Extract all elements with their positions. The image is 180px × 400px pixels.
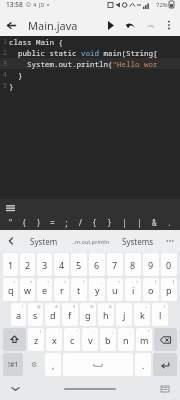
button[interactable]: 7 (107, 253, 123, 276)
button[interactable]: 0 (161, 253, 177, 276)
button[interactable]: ; (59, 214, 73, 230)
staticText: % (90, 304, 94, 309)
button[interactable]: System (22, 230, 66, 252)
button[interactable]: x (46, 328, 62, 351)
staticText: ⚙ (31, 361, 38, 369)
button[interactable]: e (37, 278, 52, 301)
staticText: System.out.println("Hello wor (9, 59, 158, 69)
button[interactable]: m (136, 328, 152, 351)
button[interactable]: j (116, 303, 132, 326)
staticText: ] (173, 279, 175, 284)
button[interactable]: 1 (0, 36, 180, 199)
button[interactable]: u (107, 278, 123, 301)
button[interactable]: i (125, 278, 141, 301)
button[interactable]: v (82, 328, 98, 351)
staticText: } (9, 81, 14, 91)
staticText: " (8, 217, 13, 228)
button[interactable]: z (28, 328, 44, 351)
staticText: $ (73, 304, 76, 309)
button[interactable]: Menu (6, 202, 18, 214)
staticText: b (105, 334, 111, 346)
button[interactable]: Back (0, 14, 22, 36)
button[interactable]: | (117, 214, 132, 230)
staticText: 72% (156, 1, 168, 9)
button[interactable]: t (71, 278, 87, 301)
button[interactable]: f (62, 303, 78, 326)
button[interactable]: a (11, 303, 26, 326)
staticText: z (34, 334, 39, 346)
staticText: e (42, 284, 48, 296)
button[interactable]: 5 (71, 253, 87, 276)
button[interactable]: s (28, 303, 43, 326)
button[interactable]: r (54, 278, 69, 301)
staticText: ( (164, 304, 166, 309)
button[interactable]: Redo (140, 15, 160, 35)
staticText: j (123, 309, 126, 321)
button[interactable]: c (64, 328, 80, 351)
button[interactable]: Previous suggestions (0, 230, 22, 252)
button[interactable]: w (20, 278, 35, 301)
staticText: g (85, 309, 91, 321)
button[interactable]: , (45, 353, 61, 376)
button[interactable]: k (134, 303, 150, 326)
button[interactable]: p (161, 278, 177, 301)
staticText: . (142, 359, 145, 371)
button[interactable]: 2 (20, 253, 35, 276)
button[interactable]: o (143, 278, 159, 301)
staticText: + (13, 279, 16, 284)
button[interactable]: 4 (54, 253, 69, 276)
button[interactable]: } (102, 214, 117, 230)
button[interactable]: | (132, 214, 147, 230)
button[interactable]: . (162, 214, 177, 230)
button[interactable] (63, 353, 133, 376)
staticText: 1 (3, 37, 7, 46)
button[interactable]: = (45, 214, 59, 230)
staticText: = (50, 217, 55, 228)
button[interactable]: . (135, 353, 151, 376)
staticText: x (52, 334, 57, 346)
button[interactable]: b (100, 328, 116, 351)
staticText: ) (40, 329, 42, 334)
button[interactable]: h (98, 303, 114, 326)
staticText: q (8, 284, 14, 296)
staticText: 2 (3, 48, 7, 57)
button[interactable]: ..m.out.println (66, 230, 115, 252)
button[interactable]: n (118, 328, 134, 351)
staticText: _ (101, 279, 103, 284)
button[interactable]: Symbols (3, 353, 23, 376)
button[interactable]: ( (17, 214, 31, 230)
button[interactable]: Enter (153, 353, 177, 376)
staticText: n (123, 334, 129, 346)
button[interactable]: 1 (3, 253, 18, 276)
button[interactable]: 6 (89, 253, 105, 276)
button[interactable]: y (89, 278, 105, 301)
button[interactable]: " (3, 214, 17, 230)
button[interactable]: { (87, 214, 102, 230)
button[interactable]: Shift (3, 328, 26, 351)
staticText: p (166, 284, 172, 296)
button[interactable]: Keyboard settings (150, 378, 180, 400)
button[interactable]: More options (160, 16, 178, 34)
button[interactable]: Undo (120, 15, 140, 35)
button[interactable]: Hide keyboard (0, 378, 30, 400)
button[interactable]: 8 (125, 253, 141, 276)
button[interactable]: 3 (37, 253, 52, 276)
button[interactable]: d (45, 303, 60, 326)
staticText: , (130, 329, 132, 334)
button[interactable]: ) (31, 214, 45, 230)
button[interactable]: q (3, 278, 18, 301)
staticText: a (16, 309, 22, 321)
staticText: } (9, 70, 23, 80)
button[interactable]: & (147, 214, 162, 230)
button[interactable]: Systems (115, 230, 160, 252)
button[interactable]: More suggestions (160, 230, 180, 252)
button[interactable]: / (73, 214, 87, 230)
button[interactable]: 9 (143, 253, 159, 276)
button[interactable]: Run (100, 15, 120, 35)
button[interactable]: l (152, 303, 168, 326)
button[interactable]: g (80, 303, 96, 326)
button[interactable]: Switch language (25, 353, 43, 376)
button[interactable]: Backspace (154, 328, 177, 351)
staticText: . (167, 217, 172, 228)
staticText: l (159, 309, 162, 321)
